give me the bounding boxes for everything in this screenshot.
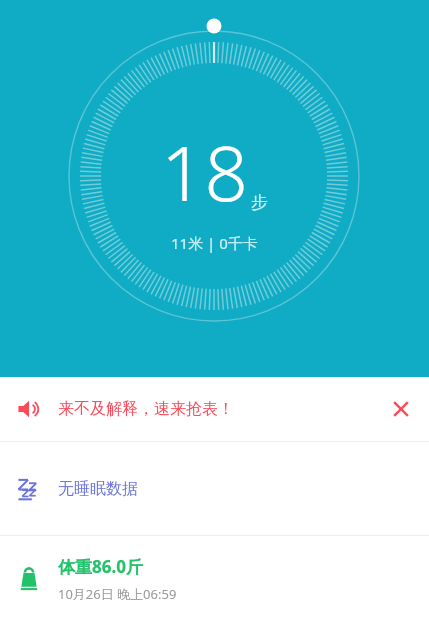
staticText: 10月26日 晚上06:59	[58, 585, 177, 603]
staticText: 体重86.0斤	[58, 555, 143, 578]
button[interactable]: 体重86.0斤	[0, 536, 429, 621]
button[interactable]: 无睡眠数据	[0, 442, 429, 535]
staticText: 18	[161, 120, 248, 224]
button[interactable]: 来不及解释，速来抢表！	[0, 377, 429, 441]
staticText: 来不及解释，速来抢表！	[58, 399, 234, 419]
staticText: 步	[251, 192, 268, 213]
button[interactable]: 关闭	[373, 381, 429, 437]
staticText: 11米 | 0千卡	[171, 233, 258, 253]
staticText: 无睡眠数据	[58, 479, 138, 499]
